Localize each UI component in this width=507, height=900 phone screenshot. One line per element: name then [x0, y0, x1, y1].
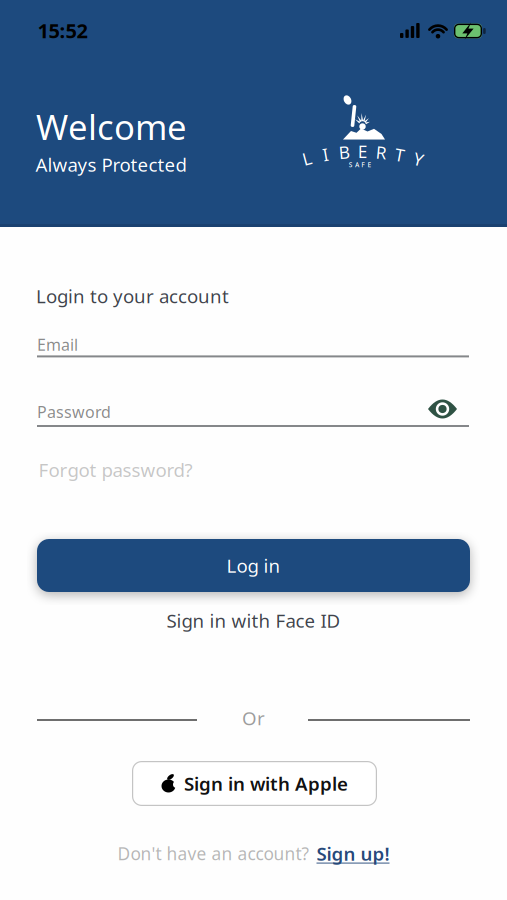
staticText: T — [395, 143, 405, 166]
button[interactable]: Password — [37, 393, 469, 427]
staticText: Don't have an account? — [117, 842, 309, 865]
staticText: Sign in with Apple — [184, 771, 348, 796]
staticText: L — [302, 147, 311, 170]
staticText: Forgot password? — [39, 457, 193, 482]
staticText: Email — [37, 334, 78, 355]
staticText: Password — [37, 401, 111, 422]
staticText: A — [355, 160, 359, 169]
staticText: F — [361, 160, 365, 169]
staticText: S — [349, 160, 353, 169]
staticText: 15:52 — [37, 17, 87, 44]
button[interactable]: Log in — [37, 539, 470, 592]
staticText: Login to your account — [36, 284, 229, 308]
button[interactable]: Forgot password? — [39, 457, 193, 482]
staticText: Y — [413, 147, 423, 170]
button[interactable]: Sign in with Apple — [132, 761, 377, 806]
button[interactable]: Sign up! — [316, 841, 389, 866]
button[interactable]: Sign in with Face ID — [166, 608, 340, 633]
button[interactable]: Show password — [427, 398, 458, 419]
staticText: Or — [242, 706, 265, 730]
staticText: B — [339, 140, 350, 163]
staticText: E — [358, 140, 368, 163]
staticText: E — [367, 160, 371, 169]
staticText: Sign in with Face ID — [166, 608, 340, 633]
staticText: Log in — [226, 553, 280, 578]
button[interactable]: Email — [37, 323, 469, 357]
staticText: I — [322, 143, 328, 166]
staticText: Always Protected — [35, 152, 186, 177]
staticText: Welcome — [36, 103, 187, 149]
staticText: R — [376, 141, 387, 164]
staticText: Sign up! — [316, 841, 389, 866]
